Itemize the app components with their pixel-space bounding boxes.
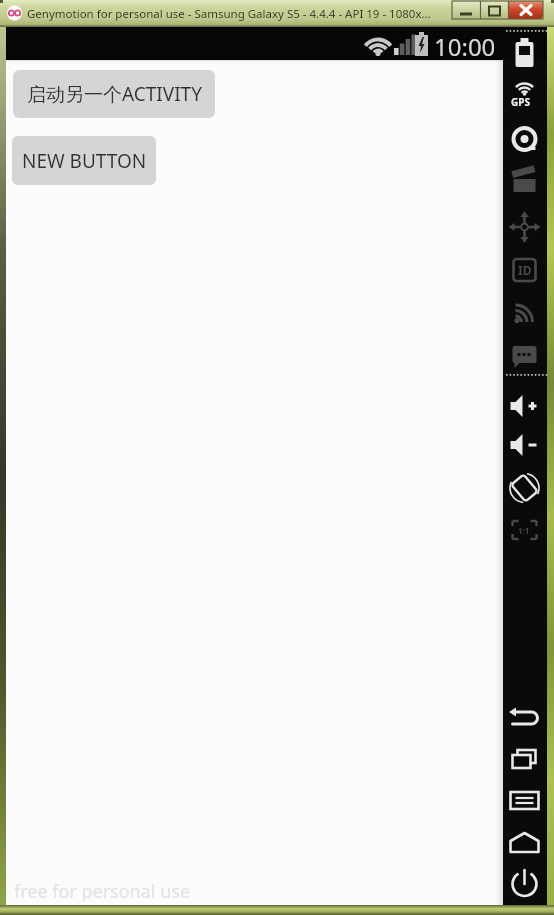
- button[interactable]: [506, 295, 544, 331]
- button[interactable]: [509, 1, 543, 19]
- staticText: NEW BUTTON: [22, 148, 147, 174]
- button[interactable]: [506, 209, 544, 245]
- button[interactable]: [506, 427, 544, 463]
- button[interactable]: [506, 782, 544, 818]
- button[interactable]: [506, 512, 544, 548]
- button[interactable]: [506, 742, 544, 778]
- button[interactable]: [481, 1, 509, 19]
- button[interactable]: 启动另一个ACTIVITY: [13, 70, 215, 118]
- button[interactable]: [506, 700, 544, 736]
- button[interactable]: [506, 388, 544, 424]
- staticText: GPS: [511, 95, 530, 109]
- staticText: 10:00: [434, 30, 496, 63]
- button[interactable]: [506, 36, 544, 72]
- button[interactable]: [506, 121, 544, 157]
- button[interactable]: NEW BUTTON: [12, 136, 156, 185]
- button[interactable]: [506, 469, 544, 505]
- staticText: 启动另一个ACTIVITY: [27, 81, 202, 107]
- staticText: Genymotion for personal use - Samsung Ga…: [27, 6, 439, 23]
- button[interactable]: [506, 79, 544, 115]
- button[interactable]: [452, 1, 481, 19]
- button[interactable]: [506, 166, 544, 202]
- button[interactable]: [506, 252, 544, 288]
- staticText: ID: [518, 262, 532, 278]
- staticText: 1:1: [518, 525, 530, 536]
- button[interactable]: [506, 866, 544, 902]
- button[interactable]: [506, 337, 544, 373]
- staticText: free for personal use: [14, 879, 191, 904]
- button[interactable]: [506, 824, 544, 860]
